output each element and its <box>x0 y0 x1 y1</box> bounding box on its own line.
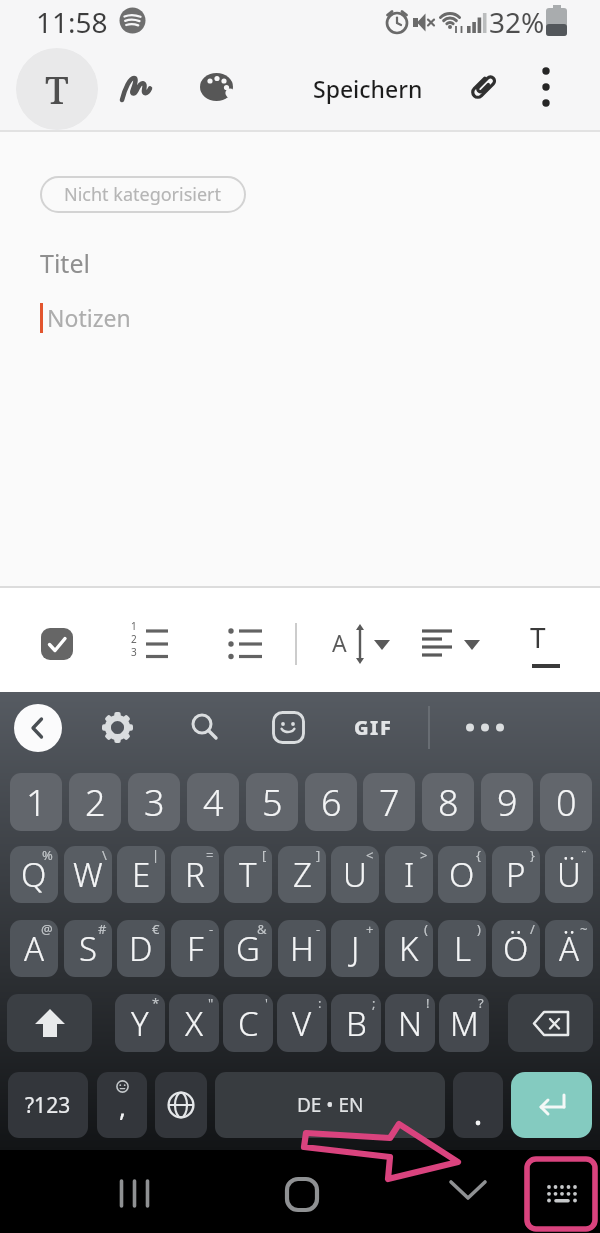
staticText: T <box>530 618 546 656</box>
staticText: 32% <box>489 3 545 41</box>
button[interactable] <box>464 720 506 735</box>
staticText: A <box>332 627 347 658</box>
button[interactable]: 8 <box>422 773 474 831</box>
button[interactable]: DE • EN <box>215 1072 445 1138</box>
button[interactable]: E <box>117 846 165 903</box>
staticText: ) <box>477 920 481 938</box>
button[interactable]: A <box>10 920 58 977</box>
button[interactable] <box>198 70 238 104</box>
button[interactable]: Y <box>115 994 165 1052</box>
button[interactable] <box>534 1168 590 1218</box>
staticText: B <box>346 1001 367 1046</box>
staticText: Q <box>21 852 47 897</box>
button[interactable] <box>453 1072 503 1138</box>
button[interactable]: C <box>223 994 273 1052</box>
button[interactable] <box>278 1168 326 1218</box>
staticText: 3 <box>144 778 165 827</box>
button[interactable]: 3 <box>128 773 180 831</box>
button[interactable]: 5 <box>246 773 298 831</box>
button[interactable]: D <box>117 920 165 977</box>
button[interactable]: Nicht kategorisiert <box>40 176 246 213</box>
staticText: - <box>209 920 214 938</box>
button[interactable]: L <box>438 920 486 977</box>
button[interactable]: G <box>224 920 272 977</box>
button[interactable]: Q <box>10 846 58 903</box>
button[interactable]: H <box>278 920 326 977</box>
button[interactable]: N <box>385 994 435 1052</box>
staticText: ] <box>316 846 321 864</box>
button[interactable]: GIF <box>346 712 400 742</box>
button[interactable]: B <box>331 994 381 1052</box>
staticText: J <box>351 926 360 971</box>
button[interactable] <box>536 66 556 110</box>
staticText: A <box>24 926 45 971</box>
button[interactable] <box>116 66 160 106</box>
staticText: 11:58 <box>36 3 108 41</box>
button[interactable] <box>14 704 62 752</box>
button[interactable]: Ü <box>545 846 593 903</box>
button[interactable] <box>508 994 593 1052</box>
button[interactable] <box>41 628 73 660</box>
staticText: & <box>257 920 267 938</box>
button[interactable] <box>7 994 92 1052</box>
button[interactable]: X <box>169 994 219 1052</box>
staticText: H <box>290 926 314 971</box>
staticText: N <box>398 1001 423 1046</box>
button[interactable]: A <box>324 618 394 670</box>
staticText: ~ <box>580 920 588 938</box>
button[interactable] <box>155 1072 207 1138</box>
button[interactable]: 2 <box>69 773 121 831</box>
staticText: 4 <box>203 778 224 827</box>
staticText: C <box>238 1001 259 1046</box>
staticText: Nicht kategorisiert <box>64 182 222 207</box>
button[interactable]: P <box>492 846 540 903</box>
button[interactable]: , <box>97 1072 147 1138</box>
button[interactable]: Z <box>278 846 326 903</box>
button[interactable]: Ö <box>492 920 540 977</box>
staticText: I <box>404 852 415 897</box>
button[interactable]: T <box>516 616 560 672</box>
button[interactable]: 7 <box>363 773 415 831</box>
staticText: | <box>152 846 160 864</box>
staticText: T <box>45 63 69 115</box>
staticText: Notizen <box>47 302 131 333</box>
button[interactable] <box>444 1168 492 1214</box>
button[interactable] <box>511 1072 592 1138</box>
button[interactable]: K <box>385 920 433 977</box>
button[interactable] <box>222 618 270 670</box>
button[interactable]: J <box>331 920 379 977</box>
button[interactable] <box>101 711 134 744</box>
staticText: ?123 <box>25 1091 71 1120</box>
button[interactable] <box>108 1168 160 1218</box>
button[interactable]: 6 <box>305 773 357 831</box>
button[interactable] <box>460 66 504 110</box>
button[interactable]: 0 <box>540 773 592 831</box>
button[interactable]: 9 <box>481 773 533 831</box>
staticText: P <box>506 852 526 897</box>
button[interactable]: M <box>439 994 489 1052</box>
button[interactable]: O <box>438 846 486 903</box>
staticText: # <box>98 920 107 938</box>
button[interactable]: 1 <box>10 773 62 831</box>
button[interactable]: R <box>171 846 219 903</box>
staticText: ' <box>265 994 268 1012</box>
button[interactable]: S <box>64 920 112 977</box>
button[interactable]: T <box>16 48 98 130</box>
button[interactable]: ?123 <box>8 1072 88 1138</box>
button[interactable]: F <box>171 920 219 977</box>
staticText: , <box>119 1089 126 1124</box>
staticText: 9 <box>497 778 518 827</box>
button[interactable]: U <box>331 846 379 903</box>
staticText: Z <box>293 852 312 897</box>
button[interactable]: Ä <box>545 920 593 977</box>
button[interactable] <box>189 712 220 743</box>
button[interactable]: W <box>64 846 112 903</box>
button[interactable]: Speichern <box>306 68 430 108</box>
button[interactable]: I <box>385 846 433 903</box>
button[interactable]: V <box>277 994 327 1052</box>
button[interactable]: T <box>224 846 272 903</box>
button[interactable] <box>272 711 305 744</box>
button[interactable]: 4 <box>187 773 239 831</box>
button[interactable]: 1 <box>126 618 174 670</box>
button[interactable] <box>420 618 484 670</box>
